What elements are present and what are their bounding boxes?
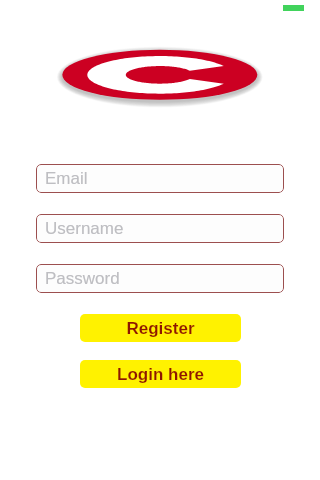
button[interactable]: Username	[36, 214, 284, 243]
staticText: Username	[45, 219, 124, 238]
button[interactable]: Register	[80, 314, 241, 342]
button[interactable]: Password	[36, 264, 284, 293]
button[interactable]: Login here	[80, 360, 241, 388]
other: App logo	[52, 38, 268, 112]
staticText: Password	[45, 269, 120, 288]
button[interactable]: Email	[36, 164, 284, 193]
staticText: Register	[126, 319, 195, 338]
staticText: Login here	[117, 365, 204, 384]
staticText: Email	[45, 169, 88, 188]
